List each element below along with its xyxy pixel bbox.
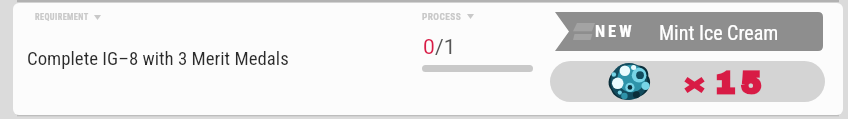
staticText: 15 [714, 67, 767, 101]
staticText: NEW [595, 22, 635, 41]
other: Mint Ice Cream item [606, 63, 652, 100]
staticText: Mint Ice Cream [659, 21, 779, 44]
button[interactable]: REQUIREMENT [13, 3, 843, 115]
button[interactable]: REQUIREMENT [35, 12, 101, 22]
staticText: Complete IG–8 with 3 Merit Medals [27, 48, 289, 70]
staticText: /1 [435, 35, 456, 60]
staticText: 0 [423, 35, 435, 60]
staticText: PROCESS [422, 11, 462, 22]
button[interactable]: Mint Ice Cream item [550, 61, 825, 102]
staticText: REQUIREMENT [35, 12, 89, 22]
button[interactable]: PROCESS [422, 11, 474, 22]
